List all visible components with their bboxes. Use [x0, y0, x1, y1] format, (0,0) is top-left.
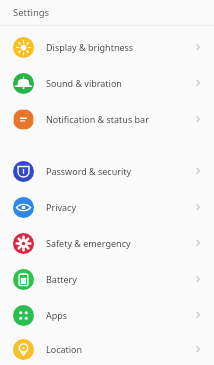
staticText: Battery: [46, 273, 192, 285]
staticText: Apps: [46, 309, 192, 321]
staticText: Password & security: [46, 165, 192, 177]
button[interactable]: Battery: [0, 261, 214, 297]
staticText: Location: [46, 343, 192, 355]
button[interactable]: Privacy: [0, 189, 214, 225]
button[interactable]: Password & security: [0, 153, 214, 189]
staticText: Display & brightness: [46, 41, 192, 53]
button[interactable]: Display & brightness: [0, 29, 214, 65]
staticText: Safety & emergency: [46, 237, 192, 249]
staticText: Sound & vibration: [46, 77, 192, 89]
staticText: Settings: [13, 6, 50, 19]
button[interactable]: Location: [0, 333, 214, 365]
button[interactable]: Notification & status bar: [0, 101, 214, 137]
button[interactable]: Safety & emergency: [0, 225, 214, 261]
button[interactable]: Sound & vibration: [0, 65, 214, 101]
staticText: Privacy: [46, 201, 192, 213]
staticText: Notification & status bar: [46, 113, 192, 125]
button[interactable]: Apps: [0, 297, 214, 333]
